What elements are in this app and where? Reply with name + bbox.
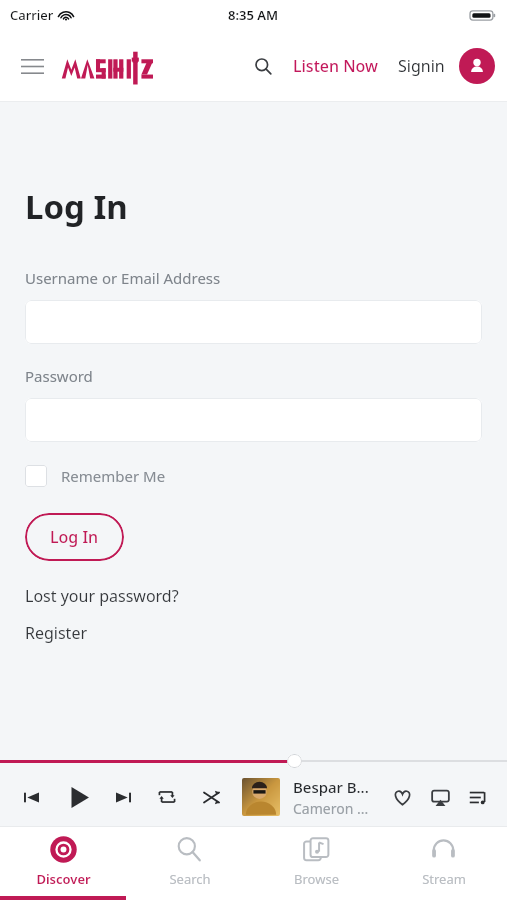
staticText: Lost your password? — [25, 585, 179, 607]
button[interactable]: Repeat — [152, 782, 182, 812]
button[interactable]: Play — [60, 778, 98, 816]
button[interactable] — [25, 300, 482, 344]
staticText: Listen Now — [293, 55, 378, 77]
button[interactable]: Browse — [253, 827, 380, 900]
staticText: Carrier — [10, 6, 54, 24]
staticText: Stream — [422, 870, 466, 888]
staticText: Username or Email Address — [25, 268, 221, 288]
button[interactable] — [60, 45, 178, 87]
button[interactable]: Search — [245, 48, 281, 84]
button[interactable]: Signin — [394, 47, 449, 85]
staticText: 8:35 AM — [228, 6, 279, 24]
staticText: Browse — [294, 870, 339, 888]
staticText: Signin — [398, 55, 445, 77]
button[interactable]: Search — [126, 827, 253, 900]
staticText: Cameron ... — [293, 799, 369, 818]
button[interactable]: Queue — [463, 782, 493, 812]
staticText: Remember Me — [61, 466, 166, 486]
button[interactable]: Remember Me — [25, 462, 166, 490]
button[interactable]: Favorite — [387, 782, 417, 812]
button[interactable]: Menu — [14, 48, 50, 84]
button[interactable] — [287, 754, 302, 768]
button[interactable]: Cast — [425, 782, 455, 812]
staticText: Log In — [50, 526, 99, 548]
staticText: Discover — [36, 870, 91, 888]
staticText: Password — [25, 366, 93, 386]
button[interactable]: Account — [459, 48, 495, 84]
staticText: Log In — [25, 184, 128, 229]
button[interactable]: Shuffle — [196, 782, 226, 812]
button[interactable]: Stream — [380, 827, 507, 900]
button[interactable]: Previous — [16, 782, 46, 812]
button[interactable]: Discover — [0, 827, 126, 900]
button[interactable]: Next — [108, 782, 138, 812]
button[interactable]: Listen Now — [287, 47, 384, 85]
button[interactable] — [242, 778, 280, 816]
button[interactable]: Lost your password? — [25, 583, 179, 609]
staticText: Bespar B... — [293, 777, 369, 797]
staticText: Search — [169, 870, 211, 888]
button[interactable]: Register — [25, 620, 88, 646]
button[interactable]: Log In — [25, 513, 124, 561]
staticText: Register — [25, 622, 88, 644]
button[interactable] — [25, 398, 482, 442]
